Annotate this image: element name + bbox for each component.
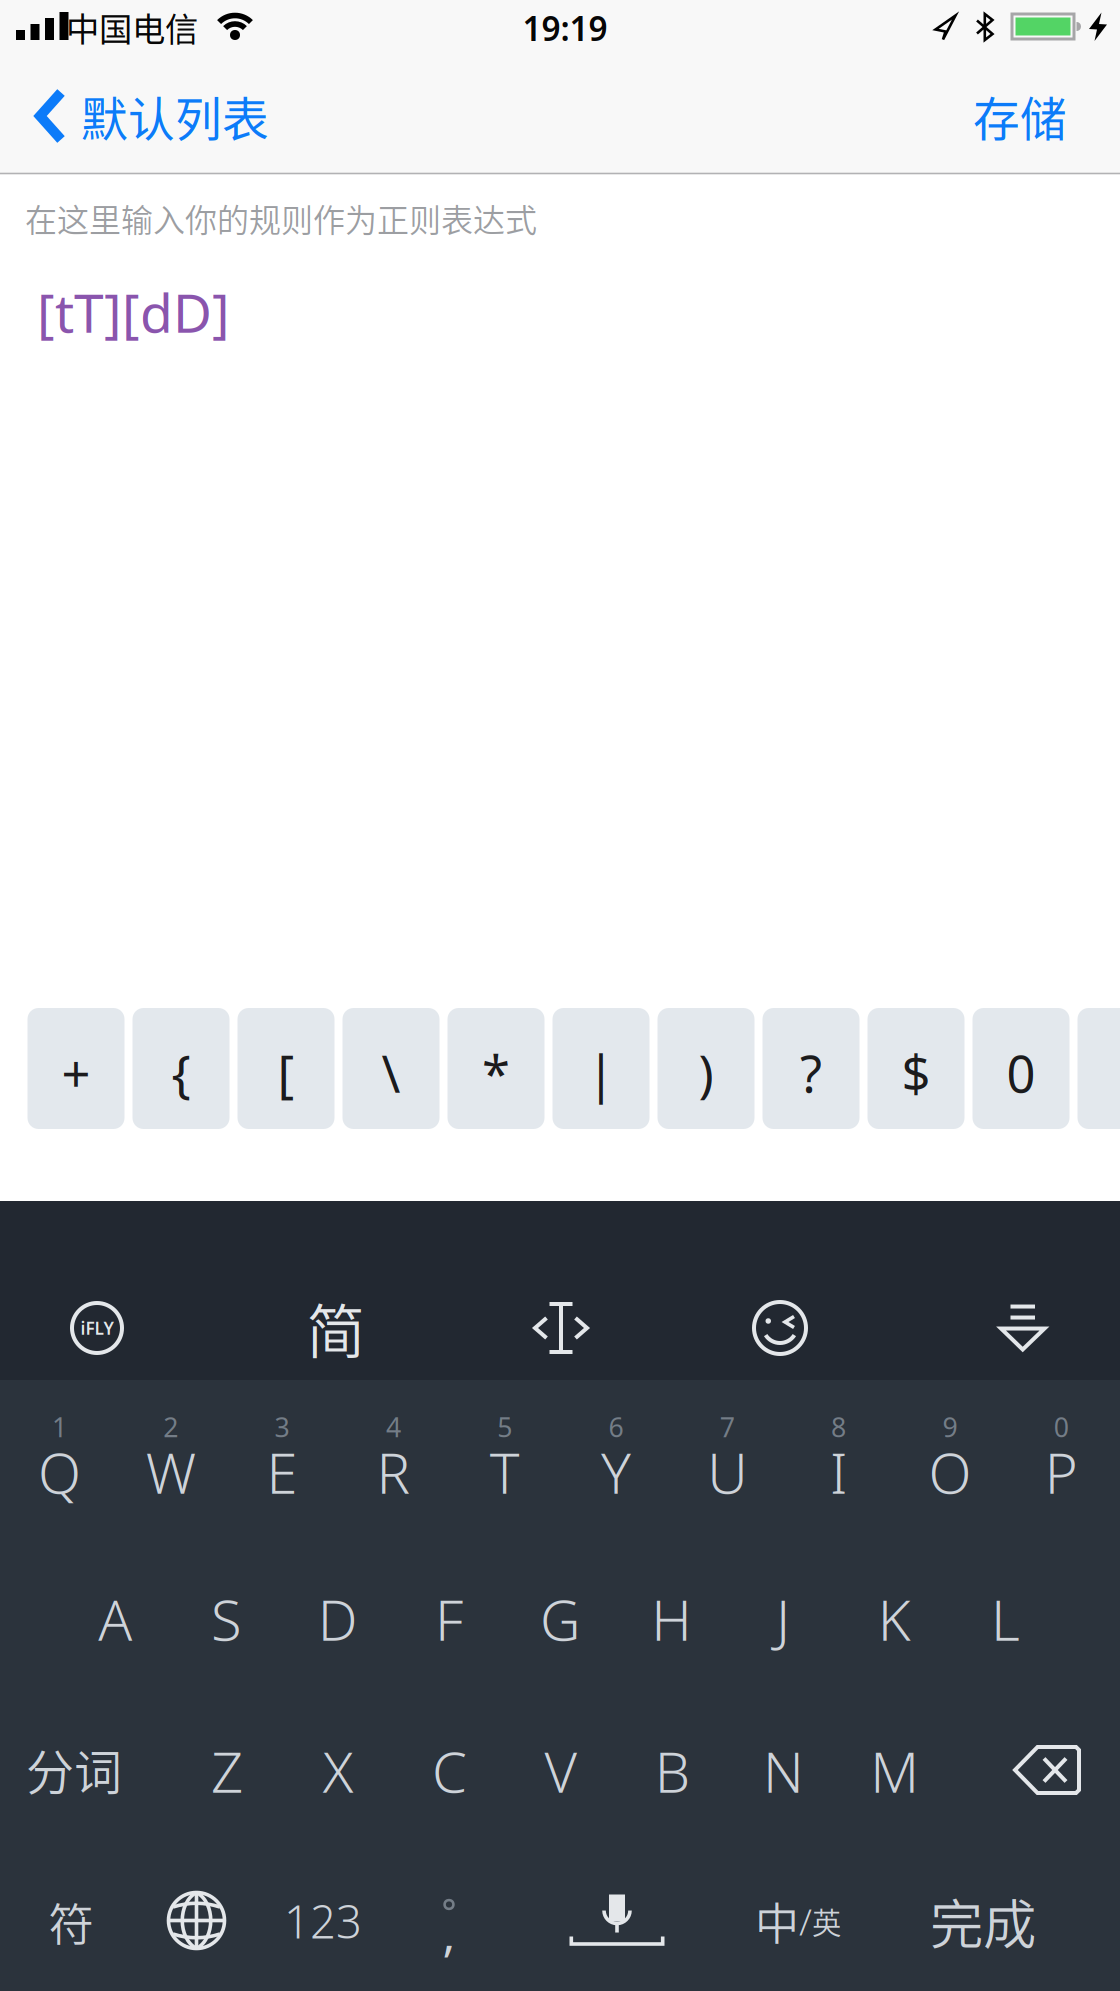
staticText: V (544, 1733, 577, 1809)
button[interactable]: C (398, 1701, 502, 1841)
staticText: 9 (942, 1409, 957, 1445)
button[interactable]: 7 (689, 1400, 765, 1510)
staticText: 在这里输入你的规则作为正则表达式 (25, 195, 537, 241)
button[interactable]: X (286, 1701, 390, 1841)
staticText: / (799, 1896, 812, 1946)
staticText: ? (800, 1038, 822, 1107)
button[interactable]: 0 (972, 1008, 1069, 1129)
staticText: G (540, 1581, 581, 1657)
staticText: 中 (755, 1889, 799, 1953)
button[interactable]: 6 (578, 1400, 654, 1510)
button[interactable]: 中英切换 (755, 1889, 841, 1953)
button[interactable]: V (509, 1701, 613, 1841)
button[interactable]: 收起键盘 (1000, 1304, 1046, 1351)
staticText: + (61, 1038, 90, 1107)
button[interactable]: K (842, 1549, 946, 1689)
staticText: { (171, 1038, 190, 1107)
staticText: * (482, 1038, 510, 1107)
button[interactable]: 简体 (306, 1285, 365, 1370)
button[interactable]: 删除 (1013, 1745, 1081, 1795)
button[interactable]: 光标 (534, 1302, 588, 1354)
staticText: 0 (1006, 1038, 1035, 1107)
button[interactable]: M (843, 1701, 947, 1841)
button[interactable]: 语音输入 (569, 1894, 664, 1945)
button[interactable]: F (397, 1549, 501, 1689)
staticText: F (435, 1581, 463, 1657)
button[interactable]: 讯飞输入法 (70, 1301, 124, 1355)
button[interactable]: Z (175, 1701, 279, 1841)
button[interactable]: 分词 (4, 1699, 144, 1839)
staticText: 中国电信 (66, 3, 198, 51)
staticText: Q (38, 1434, 81, 1510)
staticText: ) (698, 1038, 713, 1107)
staticText: U (707, 1434, 747, 1510)
staticText: 默认列表 (81, 82, 269, 150)
staticText: 英 (812, 1900, 841, 1942)
button[interactable]: [ (237, 1008, 334, 1129)
staticText: E (267, 1434, 298, 1510)
staticText: I (830, 1434, 847, 1510)
staticText: M (870, 1733, 919, 1809)
staticText: 19:19 (522, 5, 607, 51)
staticText: 完成 (930, 1882, 1036, 1960)
staticText: P (1045, 1434, 1078, 1510)
staticText: 5 (497, 1409, 512, 1445)
staticText: N (763, 1733, 804, 1809)
staticText: O (928, 1434, 971, 1510)
staticText: 2 (163, 1409, 178, 1445)
staticText: B (655, 1733, 690, 1809)
staticText: [tT][dD] (37, 276, 230, 348)
button[interactable]: N (731, 1701, 835, 1841)
button[interactable]: 完成 (893, 1851, 1073, 1991)
staticText: 1 (52, 1409, 67, 1445)
staticText: 7 (720, 1409, 735, 1445)
button[interactable]: 123 (263, 1851, 383, 1991)
staticText: [ (277, 1038, 294, 1107)
staticText: 3 (275, 1409, 290, 1445)
button[interactable]: B (620, 1701, 724, 1841)
button[interactable]: 3 (244, 1400, 320, 1510)
button[interactable]: 2 (133, 1400, 209, 1510)
staticText: 符 (48, 1889, 93, 1955)
button[interactable]: 返回 默认列表 (35, 82, 269, 150)
button[interactable]: G (508, 1549, 612, 1689)
button[interactable]: 4 (355, 1400, 431, 1510)
staticText: 0 (1054, 1409, 1069, 1445)
button[interactable]: | (552, 1008, 649, 1129)
button[interactable]: 9 (912, 1400, 988, 1510)
button[interactable]: { (132, 1008, 229, 1129)
staticText: 存储 (973, 82, 1067, 150)
staticText: W (146, 1434, 196, 1510)
button[interactable]: 符 (6, 1852, 136, 1991)
button[interactable]: ? (762, 1008, 859, 1129)
button[interactable]: H (620, 1549, 724, 1689)
button[interactable]: $ (867, 1008, 964, 1129)
button[interactable]: * (447, 1008, 544, 1129)
staticText: 分词 (26, 1734, 122, 1804)
button[interactable]: 5 (467, 1400, 543, 1510)
button[interactable]: L (954, 1549, 1058, 1689)
button[interactable]: J (731, 1549, 835, 1689)
staticText: D (318, 1581, 358, 1657)
button[interactable]: 1 (21, 1400, 97, 1510)
button[interactable]: 切换输入法 (166, 1890, 226, 1950)
staticText: 简 (306, 1285, 365, 1370)
button[interactable]: + (27, 1008, 124, 1129)
button[interactable]: 逗号 (429, 1887, 469, 1957)
button[interactable]: \ (342, 1008, 439, 1129)
button[interactable]: D (286, 1549, 390, 1689)
staticText: R (376, 1434, 410, 1510)
button[interactable]: S (174, 1549, 278, 1689)
button[interactable]: 表情 (752, 1300, 808, 1356)
staticText: 123 (284, 1890, 362, 1952)
staticText: J (776, 1581, 790, 1657)
button[interactable]: 8 (801, 1400, 877, 1510)
staticText: | (587, 1038, 615, 1107)
button[interactable]: 存储 (973, 82, 1067, 150)
staticText: K (878, 1581, 911, 1657)
button[interactable]: A (63, 1549, 167, 1689)
button[interactable]: ) (657, 1008, 754, 1129)
button[interactable]: 0 (1023, 1400, 1099, 1510)
staticText: T (490, 1434, 520, 1510)
